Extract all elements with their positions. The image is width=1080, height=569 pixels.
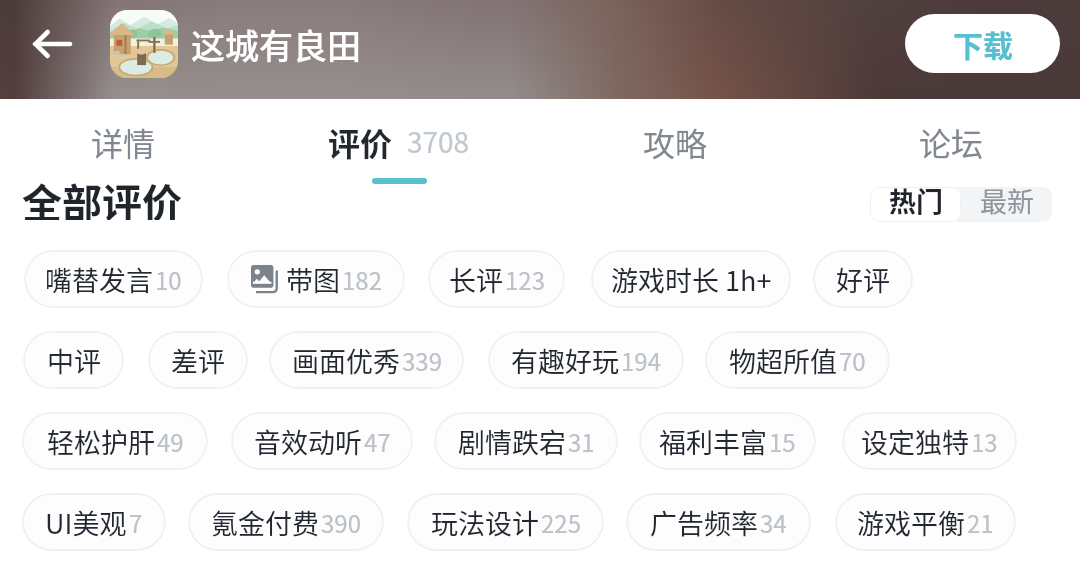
button[interactable]: 轻松护肝 bbox=[22, 412, 208, 470]
staticText: 123 bbox=[505, 262, 545, 297]
button[interactable]: Back bbox=[19, 11, 85, 77]
staticText: 21 bbox=[967, 505, 994, 540]
button[interactable]: 物超所值 bbox=[705, 331, 890, 389]
button[interactable]: 下载 bbox=[905, 14, 1060, 73]
staticText: 49 bbox=[157, 424, 184, 459]
staticText: 玩法设计 bbox=[431, 503, 539, 542]
staticText: 广告频率 bbox=[650, 503, 758, 542]
button[interactable]: UI美观 bbox=[22, 493, 166, 551]
staticText: 氪金付费 bbox=[211, 503, 319, 542]
staticText: 详情 bbox=[91, 119, 156, 165]
staticText: 全部评价 bbox=[22, 172, 182, 220]
button[interactable]: 有趣好玩 bbox=[488, 331, 684, 389]
staticText: 论坛 bbox=[919, 119, 984, 165]
staticText: 攻略 bbox=[643, 119, 708, 165]
staticText: 长评 bbox=[449, 260, 503, 299]
button[interactable]: 最新 bbox=[961, 187, 1052, 222]
button[interactable]: 详情 bbox=[0, 99, 258, 188]
staticText: 热门 bbox=[889, 187, 943, 216]
button[interactable]: 热门 bbox=[870, 187, 961, 222]
staticText: 390 bbox=[321, 505, 361, 540]
button[interactable]: 剧情跌宕 bbox=[434, 412, 618, 470]
staticText: 剧情跌宕 bbox=[458, 422, 566, 461]
staticText: 182 bbox=[342, 262, 382, 297]
staticText: 物超所值 bbox=[729, 341, 837, 380]
button[interactable]: 评价 bbox=[264, 99, 534, 188]
staticText: 好评 bbox=[836, 260, 890, 299]
staticText: 7 bbox=[129, 505, 143, 540]
staticText: 10 bbox=[155, 262, 182, 297]
staticText: 带图 bbox=[286, 260, 340, 299]
button[interactable]: 长评 bbox=[428, 250, 565, 308]
button[interactable]: 带图 bbox=[227, 250, 405, 308]
staticText: 70 bbox=[839, 343, 866, 378]
staticText: 194 bbox=[621, 343, 661, 378]
button[interactable]: 攻略 bbox=[540, 99, 810, 188]
staticText: 47 bbox=[364, 424, 391, 459]
staticText: 游戏平衡 bbox=[857, 503, 965, 542]
staticText: 福利丰富 bbox=[659, 422, 767, 461]
staticText: 嘴替发言 bbox=[45, 260, 153, 299]
staticText: 游戏时长 1h+ bbox=[611, 260, 772, 299]
button[interactable]: 氪金付费 bbox=[188, 493, 384, 551]
staticText: 轻松护肝 bbox=[47, 422, 155, 461]
button[interactable]: 中评 bbox=[23, 331, 124, 389]
staticText: 225 bbox=[541, 505, 581, 540]
button[interactable]: 福利丰富 bbox=[639, 412, 816, 470]
button[interactable]: 差评 bbox=[148, 331, 248, 389]
staticText: 最新 bbox=[980, 187, 1034, 216]
button[interactable]: 音效动听 bbox=[231, 412, 413, 470]
staticText: 中评 bbox=[47, 341, 101, 380]
staticText: 31 bbox=[568, 424, 595, 459]
staticText: UI美观 bbox=[45, 503, 127, 542]
staticText: 34 bbox=[760, 505, 787, 540]
staticText: 3708 bbox=[407, 121, 470, 162]
staticText: 下载 bbox=[953, 22, 1013, 65]
button[interactable]: 好评 bbox=[813, 250, 913, 308]
button[interactable]: 设定独特 bbox=[842, 412, 1017, 470]
button[interactable]: 玩法设计 bbox=[407, 493, 604, 551]
staticText: 339 bbox=[402, 343, 442, 378]
staticText: 差评 bbox=[171, 341, 225, 380]
staticText: 13 bbox=[971, 424, 998, 459]
button[interactable]: 广告频率 bbox=[626, 493, 811, 551]
button[interactable]: 游戏平衡 bbox=[835, 493, 1016, 551]
button[interactable]: 论坛 bbox=[816, 99, 1080, 188]
staticText: 这城有良田 bbox=[191, 20, 361, 69]
button[interactable]: 画面优秀 bbox=[269, 331, 464, 389]
button[interactable]: 嘴替发言 bbox=[24, 250, 203, 308]
button[interactable]: 游戏时长 1h+ bbox=[591, 250, 791, 308]
staticText: 设定独特 bbox=[861, 422, 969, 461]
staticText: 15 bbox=[769, 424, 796, 459]
staticText: 音效动听 bbox=[254, 422, 362, 461]
staticText: 画面优秀 bbox=[292, 341, 400, 380]
staticText: 评价 bbox=[328, 119, 393, 165]
staticText: 有趣好玩 bbox=[511, 341, 619, 380]
